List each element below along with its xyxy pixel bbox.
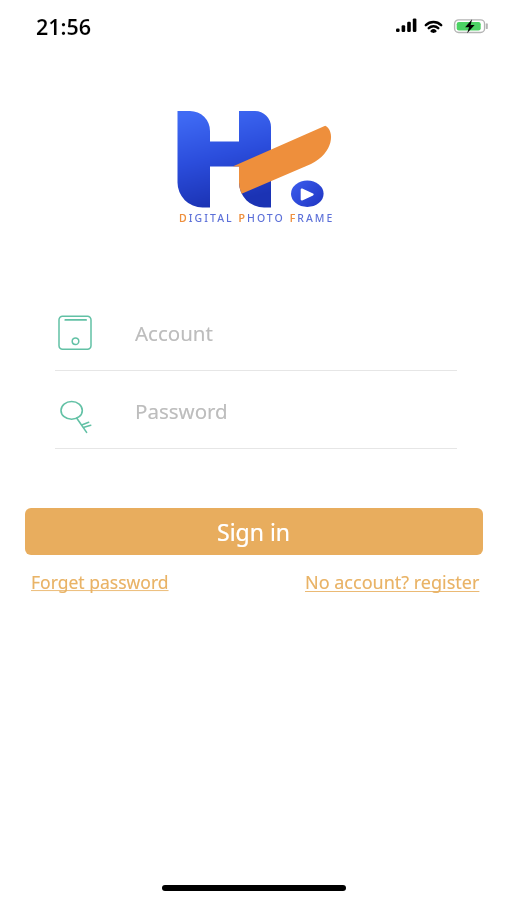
staticText: Sign in (217, 516, 291, 547)
staticText: DIGITAL PHOTO FRAME (179, 211, 335, 225)
staticText: Forget password (31, 570, 169, 594)
button[interactable]: Password (0, 381, 507, 449)
staticText: Password (135, 397, 228, 425)
button[interactable]: Forget password (31, 570, 169, 594)
button[interactable]: No account? register (305, 570, 480, 595)
button[interactable]: Sign in (25, 508, 483, 555)
staticText: Account (135, 319, 213, 347)
staticText: No account? register (305, 570, 480, 595)
button[interactable]: Account (0, 303, 507, 371)
staticText: 21:56 (36, 12, 92, 41)
